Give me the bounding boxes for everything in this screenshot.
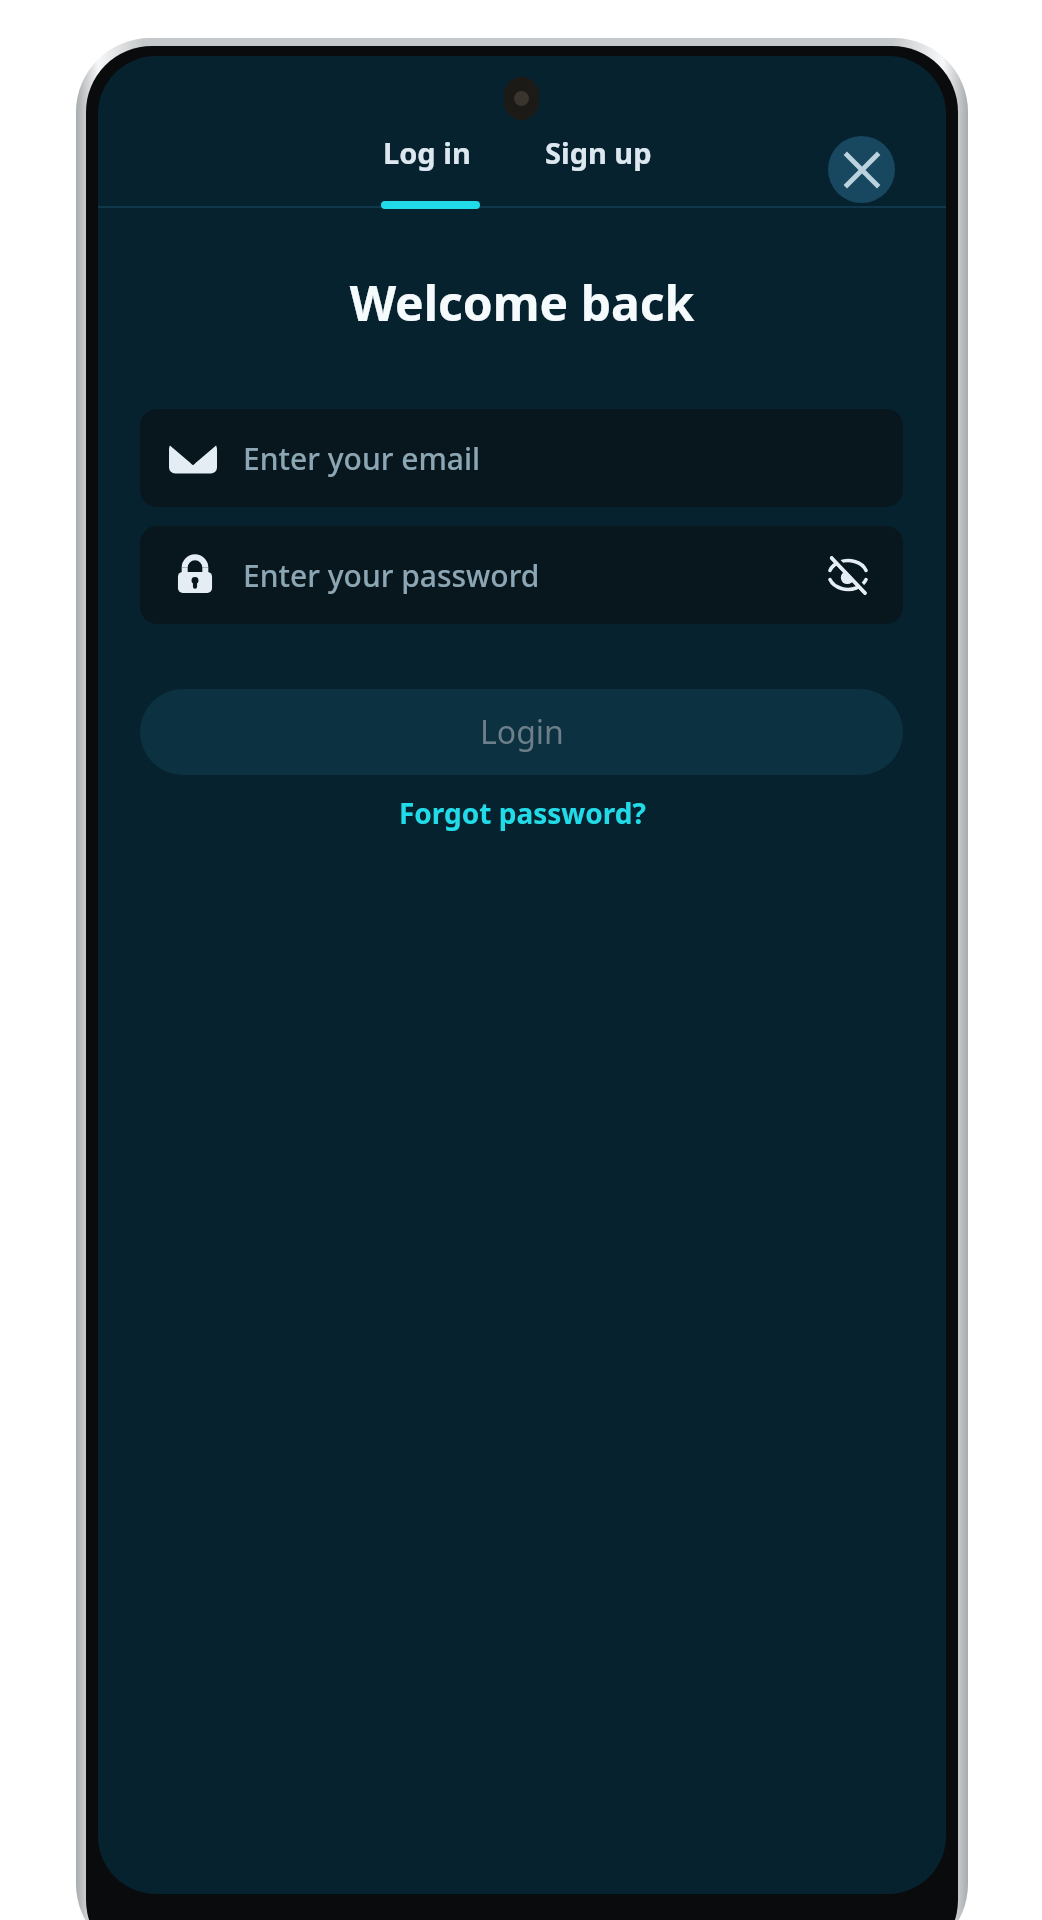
- staticText: Log in: [383, 133, 471, 172]
- button[interactable]: Close: [828, 136, 895, 203]
- staticText: Enter your password: [243, 555, 540, 596]
- staticText: Forgot password?: [399, 794, 646, 832]
- button[interactable]: Sign up: [539, 123, 658, 182]
- staticText: Enter your email: [243, 438, 481, 479]
- button[interactable]: Log in: [377, 123, 477, 182]
- button[interactable]: Login: [140, 689, 903, 775]
- staticText: Login: [480, 710, 564, 754]
- button[interactable]: Enter your email: [140, 409, 903, 507]
- staticText: Welcome back: [98, 270, 946, 335]
- button[interactable]: Show password: [815, 542, 881, 608]
- button[interactable]: Forgot password?: [381, 784, 664, 842]
- staticText: Sign up: [545, 133, 652, 172]
- button[interactable]: Enter your password: [140, 526, 903, 624]
